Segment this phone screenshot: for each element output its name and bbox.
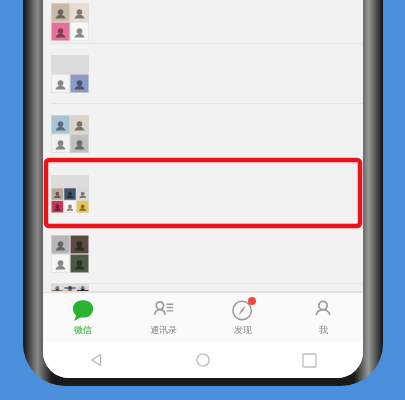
staticText: 微信	[74, 324, 92, 335]
button[interactable]	[43, 0, 363, 44]
button[interactable]	[43, 104, 363, 164]
button[interactable]	[43, 44, 363, 104]
button[interactable]	[43, 164, 363, 224]
button[interactable]: Home	[149, 342, 256, 378]
staticText: 通讯录	[150, 324, 177, 335]
button[interactable]: Back	[43, 342, 149, 378]
button[interactable]: 微信	[43, 292, 123, 342]
button[interactable]: 我	[283, 292, 363, 342]
button[interactable]: 通讯录	[123, 292, 203, 342]
staticText: 发现	[234, 324, 252, 335]
button[interactable]	[43, 284, 363, 292]
button[interactable]: 发现	[203, 292, 283, 342]
button[interactable]: Recents	[256, 342, 363, 378]
staticText: 我	[319, 324, 328, 335]
button[interactable]	[43, 224, 363, 284]
